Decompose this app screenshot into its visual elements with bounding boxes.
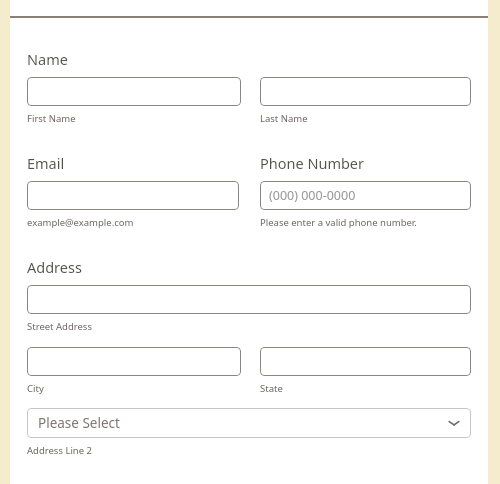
staticText: Last Name [260,112,308,125]
staticText: City [27,382,44,395]
button[interactable] [27,347,241,376]
staticText: Phone Number [260,153,365,173]
staticText: (000) 000-0000 [269,187,356,204]
staticText: Street Address [27,320,92,333]
button[interactable] [260,77,471,106]
staticText: example@example.com [27,216,134,229]
button[interactable] [27,181,239,210]
button[interactable] [27,285,471,314]
button[interactable]: (000) 000-0000 [260,181,471,210]
staticText: Address [27,257,82,277]
button[interactable] [27,77,241,106]
staticText: State [260,382,283,395]
staticText: Address Line 2 [27,444,92,457]
staticText: Email [27,153,65,173]
button[interactable] [260,347,471,376]
staticText: First Name [27,112,76,125]
staticText: Please enter a valid phone number. [260,216,417,229]
staticText: Name [27,49,68,69]
staticText: Please Select [38,414,120,432]
button[interactable]: Please Select dropdown [27,408,471,438]
